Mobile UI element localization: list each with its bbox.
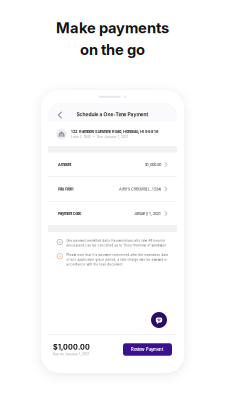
staticText: Loan L. 1045 • Due January 1, 2021 [71, 135, 128, 139]
staticText: Review Payment [131, 347, 164, 352]
button[interactable]: Pay From [48, 177, 177, 201]
staticText: Due on January 1, 2021 [53, 352, 89, 356]
staticText: Payment Date [58, 211, 81, 216]
staticText: $1,000.00 [53, 343, 90, 351]
staticText: Pay From [58, 187, 73, 191]
staticText: Schedule a One-Time Payment [76, 111, 148, 117]
staticText: One payment permitted daily. Payments ty… [66, 239, 167, 247]
button[interactable]: Payment Date [48, 201, 177, 225]
staticText: Make payments [56, 19, 169, 37]
button[interactable]: Review Payment [123, 343, 172, 356]
button[interactable]: Chat support [151, 312, 167, 328]
button[interactable]: Back [51, 105, 69, 124]
staticText: Amount [58, 162, 71, 167]
staticText: 123 Rainbow Sunshine Road, Honolulu, HI … [71, 129, 159, 134]
staticText: $1,000.00 [145, 162, 161, 167]
staticText: on the go [80, 41, 145, 58]
staticText: Alex's Checking (...1234) [119, 187, 161, 191]
staticText: January 1, 2021 [134, 211, 161, 216]
staticText: Please note that if a payment is receive… [66, 253, 168, 266]
button[interactable]: Amount [48, 152, 177, 176]
